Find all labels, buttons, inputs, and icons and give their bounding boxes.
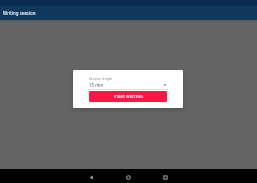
staticText: START WRITING xyxy=(114,94,143,99)
button[interactable]: Back xyxy=(73,170,110,183)
other: Open session length menu xyxy=(163,83,167,87)
staticText: Writing session xyxy=(3,10,36,16)
button[interactable]: Recent apps xyxy=(147,170,184,183)
button[interactable]: 15 min xyxy=(89,82,167,88)
button[interactable]: Home xyxy=(110,170,147,183)
staticText: Session length xyxy=(89,76,113,81)
button[interactable]: START WRITING xyxy=(89,91,167,102)
staticText: 15 min xyxy=(89,82,104,88)
